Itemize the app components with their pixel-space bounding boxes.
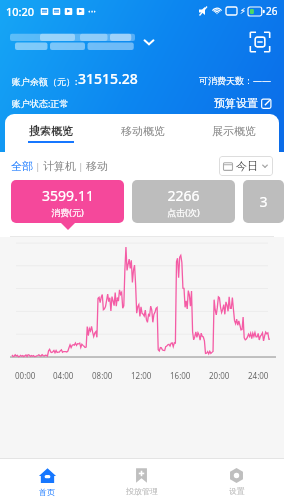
staticText: 预算设置 xyxy=(214,96,258,110)
button[interactable]: 移动概览 xyxy=(97,114,188,152)
staticText: 3 xyxy=(259,192,268,211)
staticText: 移动 xyxy=(86,159,108,173)
staticText: 点击(次) xyxy=(167,206,200,218)
staticText: 消费(元) xyxy=(51,206,84,218)
staticText: | xyxy=(33,160,43,172)
staticText: 24:00 xyxy=(248,370,269,381)
staticText: 首页 xyxy=(39,487,55,497)
button[interactable]: 3599.11 xyxy=(11,180,124,223)
staticText: 展示概览 xyxy=(212,124,256,138)
staticText: 12:00 xyxy=(131,370,152,381)
staticText: 移动概览 xyxy=(121,124,165,138)
staticText: | xyxy=(76,160,86,172)
staticText: 全部 xyxy=(11,159,33,173)
staticText: 00:00 xyxy=(15,370,36,381)
staticText: 今日 xyxy=(236,159,258,173)
button[interactable]: 今日 xyxy=(219,156,273,176)
button[interactable]: 全部 xyxy=(11,159,108,173)
staticText: 3599.11 xyxy=(42,186,94,205)
staticText: 16:00 xyxy=(170,370,191,381)
staticText: 可消费天数：—— xyxy=(199,74,272,86)
staticText: 31515.28 xyxy=(78,69,138,88)
staticText: 账户余额（元）: xyxy=(12,75,78,87)
button[interactable]: 展示概览 xyxy=(188,114,279,152)
staticText: 10:20 xyxy=(6,4,35,19)
staticText: 账户状态:正常 xyxy=(12,97,69,109)
button[interactable]: 搜索概览 xyxy=(5,114,97,152)
staticText: ⚡ xyxy=(240,7,246,16)
staticText: ··· xyxy=(88,4,97,18)
button[interactable]: 设置 xyxy=(189,459,284,504)
button[interactable]: Scan xyxy=(246,28,274,56)
staticText: 设置 xyxy=(229,486,245,496)
staticText: 计算机 xyxy=(43,159,76,173)
button[interactable]: 首页 xyxy=(0,459,94,504)
button[interactable] xyxy=(10,29,156,55)
button[interactable]: 投放管理 xyxy=(94,459,189,504)
staticText: 08:00 xyxy=(92,370,113,381)
staticText: 04:00 xyxy=(53,370,74,381)
staticText: 26 xyxy=(266,4,278,18)
button[interactable]: 预算设置 xyxy=(214,96,272,110)
button[interactable]: 2266 xyxy=(132,180,235,223)
button[interactable]: 3 xyxy=(243,180,284,223)
staticText: 搜索概览 xyxy=(29,124,73,138)
staticText: 20:00 xyxy=(209,370,230,381)
staticText: 投放管理 xyxy=(126,486,158,496)
staticText: 2266 xyxy=(167,186,200,205)
